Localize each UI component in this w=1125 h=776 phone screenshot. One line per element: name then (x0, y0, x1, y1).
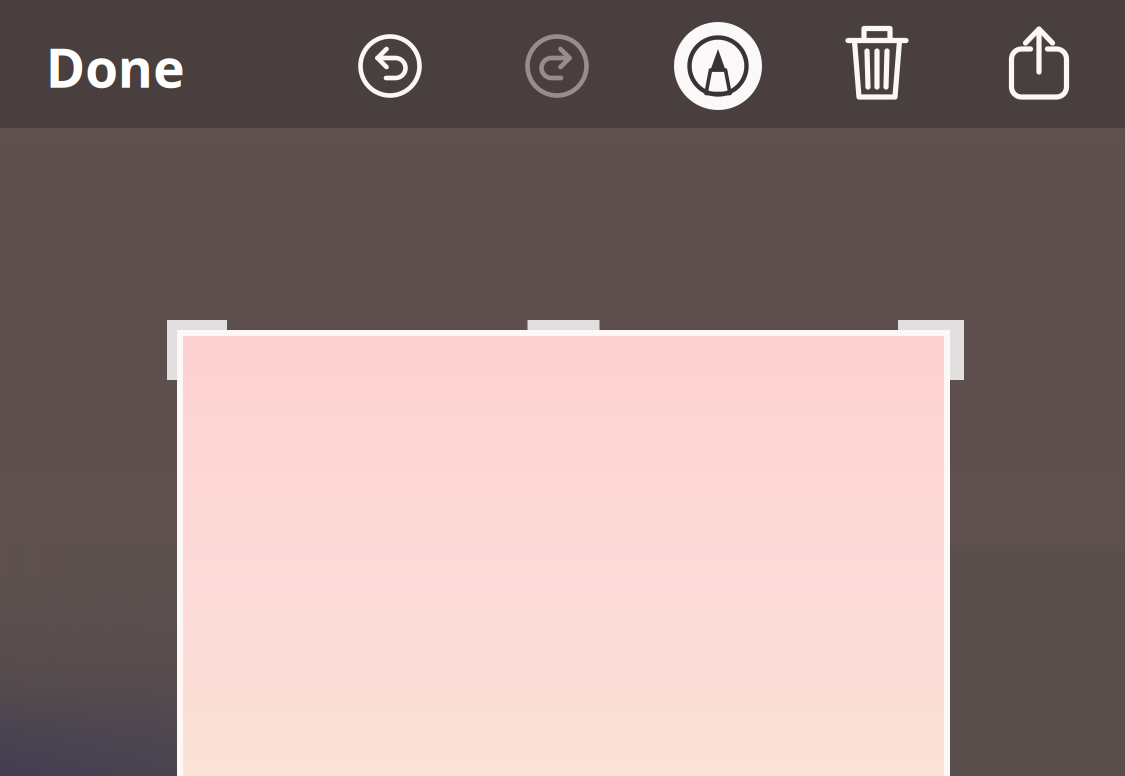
staticText: Done (46, 32, 185, 102)
button[interactable]: Undo (342, 18, 438, 114)
button[interactable]: Share (991, 14, 1087, 110)
button[interactable]: Markup (666, 14, 770, 118)
button[interactable]: Done (46, 3, 246, 131)
button[interactable]: Delete (829, 14, 925, 110)
button[interactable]: Redo (509, 18, 605, 114)
